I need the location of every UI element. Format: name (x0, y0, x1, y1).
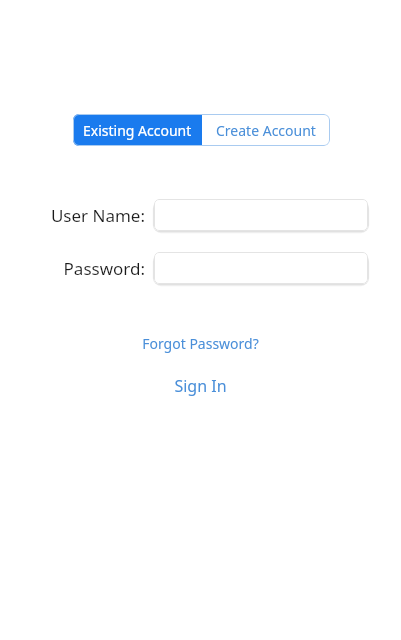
button[interactable]: Create Account (202, 114, 330, 146)
staticText: Create Account (216, 121, 316, 140)
button[interactable]: Existing Account (73, 114, 202, 146)
staticText: Existing Account (83, 121, 192, 140)
button[interactable]: Sign In (0, 374, 401, 398)
button[interactable] (154, 252, 368, 284)
staticText: Password: (63, 257, 145, 280)
button[interactable]: Forgot Password? (0, 332, 401, 354)
staticText: User Name: (50, 204, 145, 227)
staticText: Sign In (174, 375, 227, 397)
staticText: Forgot Password? (142, 334, 259, 353)
button[interactable] (154, 199, 368, 231)
